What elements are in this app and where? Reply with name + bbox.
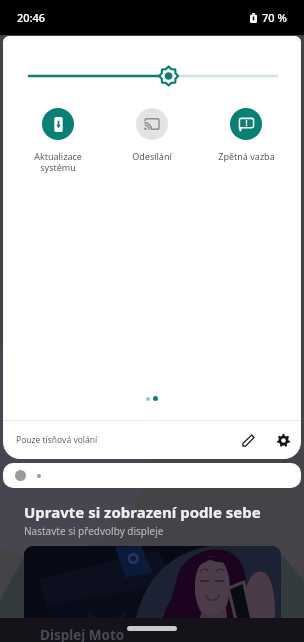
staticText: Displej Moto: [40, 626, 125, 642]
button[interactable]: Edit: [233, 425, 263, 455]
button[interactable]: [3, 463, 301, 488]
staticText: Zpětná vazba: [218, 150, 275, 162]
staticText: Odesílání: [132, 150, 172, 162]
staticText: Aktualizace systému: [34, 150, 82, 174]
button[interactable]: [24, 546, 281, 642]
staticText: 20:46: [17, 10, 46, 25]
staticText: 70 %: [262, 10, 287, 25]
button[interactable]: Zpětná vazba: [199, 108, 293, 162]
button[interactable]: Odesílání: [105, 108, 199, 162]
button[interactable]: Aktualizace systému: [11, 108, 105, 174]
staticText: Nastavte si předvolby displeje: [24, 524, 164, 538]
staticText: Upravte si zobrazení podle sebe: [24, 502, 261, 522]
button[interactable]: Settings: [268, 425, 298, 455]
staticText: Pouze tísňová volání: [16, 434, 98, 446]
